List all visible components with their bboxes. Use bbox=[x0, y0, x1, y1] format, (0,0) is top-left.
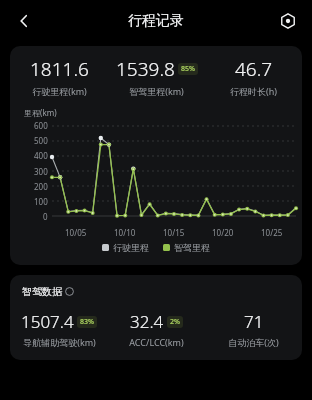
staticText: 2% bbox=[170, 317, 180, 327]
other: 说明 bbox=[65, 287, 74, 296]
staticText: 行驶里程 bbox=[113, 242, 149, 253]
staticText: 32.4 bbox=[130, 310, 164, 333]
staticText: 46.7 bbox=[235, 56, 273, 82]
button[interactable]: 智驾数据 bbox=[22, 285, 74, 298]
button[interactable]: 行驶里程 bbox=[102, 242, 149, 253]
staticText: 智驾里程 bbox=[174, 242, 210, 253]
button[interactable]: 1811.6 bbox=[10, 56, 108, 97]
staticText: 71 bbox=[244, 310, 264, 333]
staticText: 1811.6 bbox=[30, 56, 89, 82]
staticText: 10/10 bbox=[114, 227, 136, 238]
button[interactable]: 71 bbox=[205, 310, 302, 348]
button[interactable]: 1507.4 bbox=[10, 310, 108, 348]
staticText: 1507.4 bbox=[21, 310, 74, 333]
staticText: 10/25 bbox=[261, 227, 283, 238]
staticText: 10/20 bbox=[212, 227, 234, 238]
staticText: 400 bbox=[34, 150, 48, 161]
button[interactable]: 智驾里程 bbox=[163, 242, 210, 253]
staticText: 行程记录 bbox=[128, 12, 184, 30]
staticText: 300 bbox=[34, 166, 48, 177]
staticText: 0 bbox=[43, 211, 48, 222]
button[interactable]: 返回 bbox=[8, 5, 40, 37]
staticText: 1539.8 bbox=[116, 56, 175, 82]
button[interactable]: 设置 bbox=[272, 5, 304, 37]
staticText: 83% bbox=[80, 317, 94, 327]
staticText: 里程(km) bbox=[24, 107, 57, 118]
staticText: 行程时长(h) bbox=[230, 85, 277, 97]
button[interactable]: 32.4 bbox=[108, 310, 205, 348]
staticText: 自动泊车(次) bbox=[228, 336, 279, 348]
staticText: 10/05 bbox=[65, 227, 87, 238]
staticText: 导航辅助驾驶(km) bbox=[23, 336, 96, 348]
staticText: 200 bbox=[34, 181, 48, 192]
staticText: 600 bbox=[34, 120, 48, 131]
staticText: 智驾数据 bbox=[22, 285, 62, 298]
button[interactable]: 1539.8 bbox=[108, 56, 205, 97]
staticText: 10/15 bbox=[163, 227, 185, 238]
button[interactable]: 46.7 bbox=[205, 56, 302, 97]
staticText: 85% bbox=[181, 64, 195, 74]
staticText: ACC/LCC(km) bbox=[129, 336, 184, 348]
staticText: 智驾里程(km) bbox=[129, 85, 184, 97]
staticText: 100 bbox=[34, 196, 48, 207]
staticText: 行驶里程(km) bbox=[32, 85, 87, 97]
staticText: 500 bbox=[34, 135, 48, 146]
